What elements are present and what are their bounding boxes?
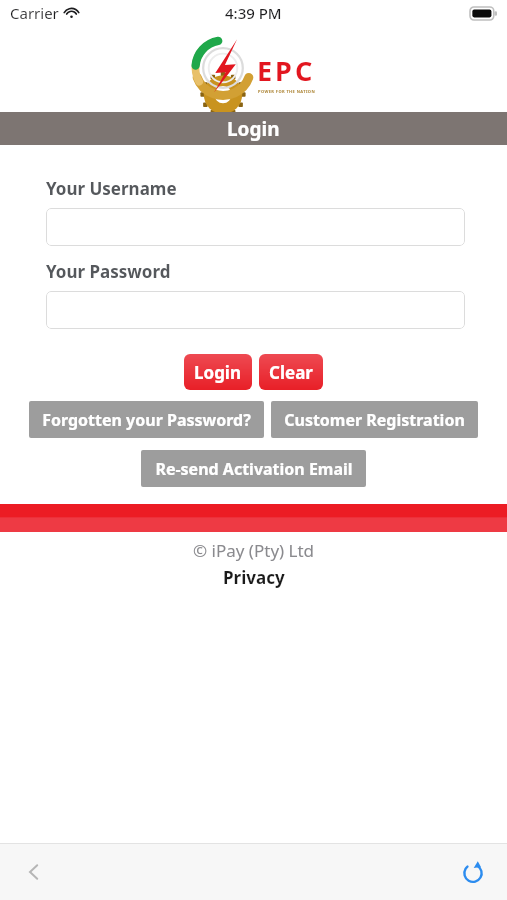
staticText: Login [194,361,242,384]
staticText: Clear [269,361,313,384]
staticText: Privacy [223,566,285,589]
staticText: © iPay (Pty) Ltd [193,539,315,562]
staticText: Re-send Activation Email [155,458,353,480]
button[interactable] [46,291,465,329]
staticText: Your Username [46,177,177,200]
staticText: Your Password [46,260,171,283]
staticText: Customer Registration [284,409,465,431]
staticText: Carrier [10,3,59,23]
staticText: 4:39 PM [225,3,282,23]
button[interactable]: Customer Registration [271,401,478,438]
button[interactable]: Login [184,354,252,390]
button[interactable]: Privacy [0,566,507,589]
button[interactable]: Clear [259,354,323,390]
button[interactable]: Reload [453,852,493,892]
button[interactable]: Forgotten your Password? [29,401,264,438]
staticText: POWER FOR THE NATION [258,89,316,94]
staticText: Login [227,116,280,142]
button[interactable] [46,208,465,246]
button[interactable]: Re-send Activation Email [141,450,366,487]
button[interactable]: Back [14,852,54,892]
staticText: EPC [257,52,316,89]
staticText: Forgotten your Password? [42,409,251,431]
